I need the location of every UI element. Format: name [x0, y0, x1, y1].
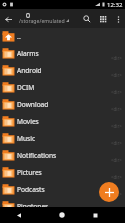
button[interactable]: Back	[0, 11, 16, 27]
button[interactable]: Music	[0, 130, 125, 147]
staticText: <dir>	[111, 106, 122, 112]
button[interactable]: Add	[99, 182, 119, 202]
button[interactable]: Grid view	[95, 11, 111, 27]
staticText: <dir>	[111, 72, 122, 78]
staticText: Notifications	[17, 151, 57, 160]
staticText: Download	[17, 100, 49, 109]
button[interactable]: Alarms	[0, 45, 125, 62]
button[interactable]: Home	[54, 207, 70, 223]
staticText: Podcasts	[17, 185, 45, 194]
staticText: Android	[17, 66, 42, 75]
button[interactable]: Back	[11, 207, 27, 223]
staticText: Music	[17, 134, 36, 143]
button[interactable]: ..	[0, 28, 125, 45]
staticText: <dir>	[111, 157, 122, 163]
button[interactable]: DCIM	[0, 79, 125, 96]
staticText: <dir>	[111, 123, 122, 129]
staticText: Alarms	[17, 49, 39, 58]
button[interactable]: Ringtones	[0, 198, 125, 215]
button[interactable]: Search	[78, 10, 95, 27]
staticText: ..	[17, 32, 21, 42]
button[interactable]: Android	[0, 62, 125, 79]
staticText: Movies	[17, 117, 39, 126]
staticText: 12:32	[107, 1, 123, 9]
button[interactable]: Recents	[87, 207, 103, 223]
button[interactable]: Download	[0, 96, 125, 113]
staticText: DCIM	[17, 83, 35, 92]
staticText: <dir>	[111, 55, 122, 61]
staticText: Pictures	[17, 168, 42, 177]
button[interactable]: Pictures	[0, 164, 125, 181]
staticText: 0	[26, 11, 31, 21]
button[interactable]: Movies	[0, 113, 125, 130]
button[interactable]: More options	[111, 12, 125, 26]
staticText: /storage/emulated	[19, 17, 65, 24]
button[interactable]: Podcasts	[0, 181, 125, 198]
staticText: <dir>	[111, 191, 122, 197]
staticText: <dir>	[111, 140, 122, 146]
staticText: <dir>	[111, 174, 122, 180]
staticText: <dir>	[111, 89, 122, 95]
button[interactable]: Notifications	[0, 147, 125, 164]
staticText: Ringtones	[17, 202, 49, 211]
